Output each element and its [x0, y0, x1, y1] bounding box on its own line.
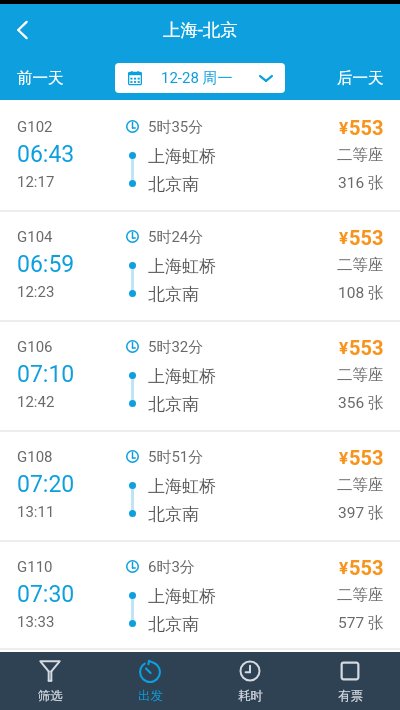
button[interactable]: Duration [200, 652, 300, 710]
staticText: 12:17 [17, 173, 55, 191]
staticText: 553 [349, 446, 384, 469]
button[interactable]: 后一天 [320, 55, 400, 100]
staticText: 上海虹桥 [148, 476, 216, 497]
staticText: 二等座 [337, 585, 384, 605]
button[interactable]: G106 [0, 320, 400, 430]
staticText: 07:30 [17, 581, 75, 608]
staticText: 上海虹桥 [148, 366, 216, 387]
staticText: 108 张 [338, 283, 384, 303]
staticText: 二等座 [337, 145, 384, 165]
staticText: 06:43 [17, 141, 75, 168]
button[interactable]: G104 [0, 210, 400, 320]
button[interactable]: Back [0, 9, 42, 51]
staticText: 12:23 [17, 283, 55, 301]
staticText: 二等座 [337, 255, 384, 275]
staticText: G110 [17, 558, 53, 576]
staticText: 07:10 [17, 361, 75, 388]
staticText: 二等座 [337, 365, 384, 385]
staticText: 上海-北京 [163, 19, 238, 41]
staticText: 前一天 [17, 68, 64, 88]
staticText: 北京南 [148, 174, 199, 195]
button[interactable]: G110 [0, 540, 400, 650]
staticText: 06:59 [17, 251, 75, 278]
staticText: G106 [17, 338, 53, 356]
staticText: 筛选 [38, 688, 63, 704]
staticText: 553 [349, 116, 384, 139]
staticText: 356 张 [338, 393, 384, 413]
button[interactable]: G108 [0, 430, 400, 540]
button[interactable]: Departure time [100, 652, 200, 710]
staticText: 5时24分 [148, 228, 204, 247]
staticText: 553 [349, 226, 384, 249]
staticText: 316 张 [338, 173, 384, 193]
staticText: 07:20 [17, 471, 75, 498]
staticText: 12:42 [17, 393, 55, 411]
staticText: 北京南 [148, 284, 199, 305]
staticText: 二等座 [337, 475, 384, 495]
staticText: 577 张 [338, 613, 384, 633]
staticText: 13:33 [17, 613, 55, 631]
staticText: 出发 [138, 688, 163, 704]
staticText: 后一天 [337, 68, 384, 88]
button[interactable]: 前一天 [0, 55, 80, 100]
staticText: G108 [17, 448, 53, 466]
staticText: 5时32分 [148, 338, 204, 357]
staticText: 553 [349, 336, 384, 359]
staticText: 北京南 [148, 394, 199, 415]
staticText: 北京南 [148, 614, 199, 635]
staticText: G102 [17, 118, 53, 136]
staticText: ¥ [339, 558, 349, 578]
staticText: 13:11 [17, 503, 55, 521]
staticText: ¥ [339, 118, 349, 138]
staticText: 有票 [338, 688, 363, 704]
staticText: 6时3分 [148, 558, 195, 577]
button[interactable]: G102 [0, 100, 400, 210]
staticText: 上海虹桥 [148, 586, 216, 607]
staticText: 5时51分 [148, 448, 204, 467]
staticText: 上海虹桥 [148, 146, 216, 167]
staticText: ¥ [339, 338, 349, 358]
staticText: ¥ [339, 448, 349, 468]
staticText: 553 [349, 556, 384, 579]
staticText: G104 [17, 228, 53, 246]
staticText: 耗时 [238, 688, 263, 704]
staticText: 397 张 [338, 503, 384, 523]
staticText: 5时35分 [148, 118, 204, 137]
button[interactable]: Filter [0, 652, 100, 710]
staticText: 12-28 周一 [161, 69, 233, 88]
button[interactable]: Tickets available [300, 652, 400, 710]
staticText: 北京南 [148, 504, 199, 525]
staticText: ¥ [339, 228, 349, 248]
button[interactable]: 12-28 周一 [115, 63, 285, 93]
staticText: 上海虹桥 [148, 256, 216, 277]
